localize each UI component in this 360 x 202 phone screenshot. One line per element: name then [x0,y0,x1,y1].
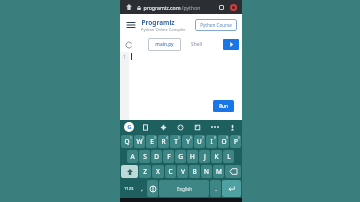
staticText: G [178,152,183,161]
button[interactable]: F [163,150,174,163]
staticText: T [174,137,178,146]
staticText: O [221,137,227,146]
button[interactable]: Menu [125,19,137,31]
staticText: N [204,167,209,176]
button[interactable]: Google [124,122,134,132]
staticText: C [168,167,173,176]
button[interactable]: 4 [158,135,169,148]
button[interactable]: B [189,165,200,178]
button[interactable]: G [175,150,186,163]
staticText: A [130,152,135,161]
staticText: K [214,152,219,161]
button[interactable]: , [137,180,146,197]
button[interactable]: Shift [121,165,138,178]
button[interactable]: 7 [194,135,205,148]
staticText: 7 [202,136,204,140]
button[interactable]: D [151,150,162,163]
button[interactable]: Run [223,39,239,50]
staticText: V [181,167,185,176]
staticText: Python Course [200,22,232,28]
button[interactable]: 8 [206,135,217,148]
staticText: X [156,167,160,176]
staticText: H [190,152,195,161]
button[interactable]: Backspace [225,165,241,178]
staticText: 3 [154,136,156,140]
button[interactable]: A [127,150,138,163]
button[interactable]: X [152,165,164,178]
staticText: L [227,152,231,161]
button[interactable]: N [201,165,212,178]
staticText: Run [219,103,228,109]
button[interactable]: More options [228,2,238,12]
staticText: Z [143,167,147,176]
button[interactable]: J [199,150,210,163]
staticText: W [136,137,143,146]
staticText: Programiz [141,18,175,27]
button[interactable]: Shell [184,38,209,51]
button[interactable]: M [213,165,224,178]
staticText: /python [181,4,201,11]
button[interactable]: Language [147,180,158,197]
staticText: S [143,152,147,161]
button[interactable]: Refresh [123,39,134,50]
staticText: Python Online Compiler [141,27,186,32]
button[interactable]: Sticker [191,121,203,133]
button[interactable]: V [177,165,188,178]
button[interactable]: 5 [170,135,181,148]
staticText: R [161,137,166,146]
button[interactable]: English [159,180,209,197]
button[interactable]: programiz.com [137,4,216,11]
button[interactable]: Emoji [174,121,186,133]
staticText: D [154,152,159,161]
button[interactable]: Voice input [226,121,238,133]
staticText: U [197,137,202,146]
button[interactable]: ?123 [121,180,136,197]
button[interactable]: main.py [148,38,181,51]
staticText: Q [124,137,130,146]
staticText: P [234,137,238,146]
staticText: 9 [226,136,228,140]
staticText: E [150,137,154,146]
staticText: J [204,152,206,161]
staticText: . [215,185,217,193]
staticText: programiz.com [143,4,181,11]
button[interactable]: S [139,150,150,163]
staticText: 5 [178,136,180,140]
staticText: Shell [191,41,202,48]
staticText: F [167,152,171,161]
staticText: B [192,167,197,176]
button[interactable]: 1 [121,135,133,148]
staticText: Y [186,137,190,146]
button[interactable]: Home [124,2,134,12]
button[interactable]: C [165,165,176,178]
button[interactable]: Enter [222,180,241,197]
button[interactable]: . [210,180,221,197]
staticText: 2 [142,136,144,140]
staticText: 0 [238,136,240,140]
staticText: English [177,186,192,192]
button[interactable]: L [223,150,234,163]
button[interactable]: Run [213,100,234,112]
button[interactable]: 9 [218,135,229,148]
button[interactable]: 2 [134,135,145,148]
button[interactable]: 3 [146,135,157,148]
staticText: G [127,123,132,131]
staticText: 6 [190,136,192,140]
button[interactable]: H [187,150,198,163]
button[interactable]: Tabs [216,2,226,12]
staticText: M [216,167,222,176]
staticText: 1 [123,54,126,60]
button[interactable]: 6 [182,135,193,148]
staticText: ?123 [124,186,134,192]
staticText: 8 [214,136,216,140]
button[interactable]: Python Course [195,19,237,31]
staticText: 1 [130,136,132,140]
button[interactable]: K [211,150,222,163]
staticText: I [210,137,213,146]
button[interactable]: Settings [157,121,169,133]
button[interactable]: More [209,121,221,133]
button[interactable]: Clipboard [139,121,151,133]
staticText: , [141,185,143,193]
button[interactable]: 0 [230,135,241,148]
button[interactable]: Z [139,165,151,178]
